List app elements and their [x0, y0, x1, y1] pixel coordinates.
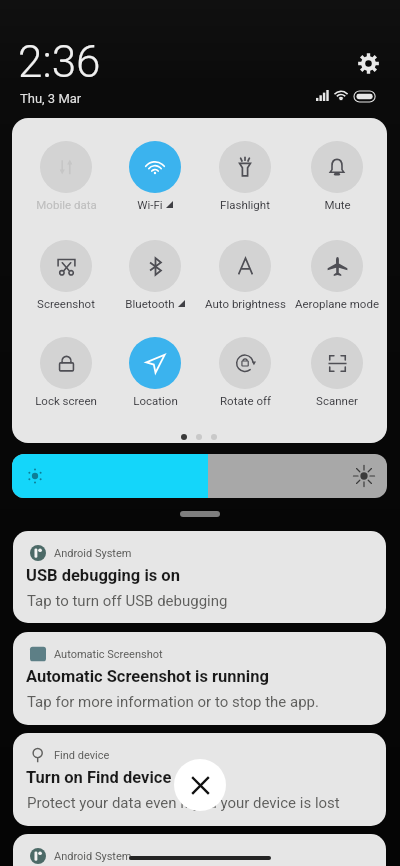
button[interactable]: Android System [13, 531, 386, 623]
button[interactable]: Scanner [290, 337, 384, 407]
staticText: Tap for more information or to stop the … [27, 693, 379, 711]
staticText: Aeroplane mode [295, 297, 379, 310]
staticText: Thu, 3 Mar [20, 91, 82, 106]
staticText: Mobile data [36, 198, 97, 211]
button[interactable]: Bluetooth [108, 240, 202, 310]
button[interactable]: Automatic Screenshot [13, 632, 386, 725]
staticText: Wi-Fi [137, 198, 163, 211]
button[interactable]: Brightness [12, 454, 387, 498]
staticText: Location [133, 394, 178, 407]
staticText: Screenshot [37, 297, 95, 310]
staticText: Auto brightness [205, 297, 286, 310]
staticText: Protect your data even if you your devic… [27, 794, 379, 812]
button[interactable]: Lock screen [19, 337, 113, 407]
button[interactable]: Screenshot [19, 240, 113, 310]
button[interactable]: Flashlight [198, 141, 292, 211]
button[interactable]: Clear all notifications [174, 759, 226, 811]
staticText: Automatic Screenshot [54, 648, 163, 661]
button[interactable]: Mute [290, 141, 384, 211]
staticText: Flashlight [220, 198, 270, 211]
button[interactable]: Wi-Fi [108, 141, 202, 211]
staticText: Lock screen [35, 394, 97, 407]
staticText: 2:36 [18, 36, 101, 88]
staticText: Rotate off [220, 394, 271, 407]
button[interactable]: Settings [352, 47, 384, 79]
button[interactable]: Auto brightness [198, 240, 292, 310]
button[interactable]: Rotate off [198, 337, 292, 407]
button[interactable]: Mobile data [19, 141, 113, 211]
staticText: Android System [54, 850, 132, 863]
staticText: Turn on Find device [26, 768, 172, 787]
staticText: Android System [54, 547, 132, 560]
button[interactable]: Location [108, 337, 202, 407]
staticText: Bluetooth [125, 297, 175, 310]
staticText: USB debugging is on [26, 566, 180, 585]
staticText: Find device [54, 749, 110, 762]
staticText: Automatic Screenshot is running [26, 667, 269, 686]
button[interactable]: Find device [13, 733, 386, 826]
button[interactable]: Android System [13, 834, 386, 866]
button[interactable]: Aeroplane mode [290, 240, 384, 310]
staticText: Scanner [316, 394, 358, 407]
staticText: Mute [324, 198, 351, 211]
staticText: Tap to turn off USB debugging [27, 592, 379, 610]
